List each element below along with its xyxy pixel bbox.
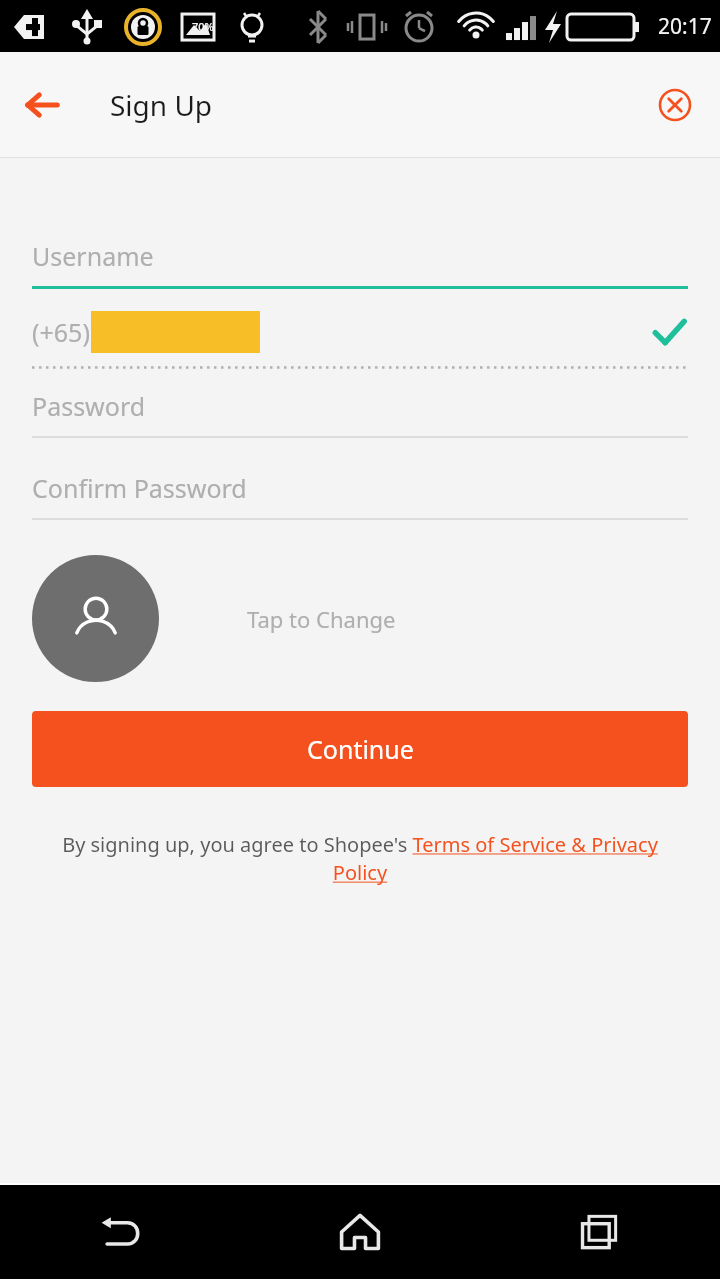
button[interactable]: Home	[240, 1185, 480, 1279]
button[interactable]: Change profile photo	[32, 555, 159, 682]
button[interactable]: Continue	[32, 711, 688, 787]
button[interactable]: By signing up, you agree to Shopee's Ter…	[36, 831, 684, 886]
staticText: Sign Up	[110, 86, 213, 124]
button[interactable]: Tap to Change	[247, 604, 396, 634]
staticText: Password	[32, 389, 146, 423]
button[interactable]: Close	[648, 78, 702, 132]
staticText: By signing up, you agree to Shopee's Ter…	[36, 831, 684, 886]
staticText: Continue	[307, 732, 414, 766]
button[interactable]: Recent apps	[480, 1185, 720, 1279]
staticText: 20:17	[658, 12, 712, 41]
button[interactable]: Back	[0, 1185, 240, 1279]
button[interactable]: Password	[32, 389, 688, 438]
staticText: 70%	[192, 19, 214, 34]
staticText: Confirm Password	[32, 471, 247, 505]
button[interactable]: Back	[12, 75, 72, 135]
button[interactable]: (+65)	[32, 311, 688, 369]
staticText: Tap to Change	[247, 604, 396, 634]
button[interactable]: Username	[32, 239, 688, 289]
staticText: Username	[32, 239, 154, 273]
staticText: (+65)	[32, 315, 90, 349]
button[interactable]: Confirm Password	[32, 471, 688, 520]
